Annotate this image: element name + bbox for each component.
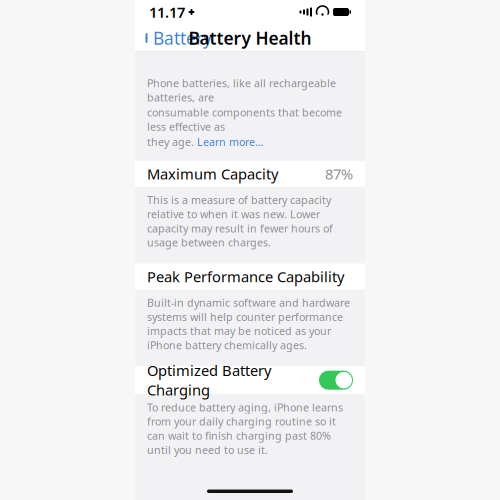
button[interactable]: Peak Performance Capability: [135, 263, 365, 289]
staticText: Phone batteries, like all rechargeable b…: [147, 76, 336, 104]
staticText: 11.17: [149, 2, 185, 22]
staticText: Peak Performance Capability: [147, 267, 344, 286]
staticText: Learn more…: [197, 135, 263, 149]
staticText: Optimized Battery Charging: [147, 361, 271, 400]
staticText: To reduce battery aging, iPhone learns f…: [147, 400, 343, 457]
staticText: 87%: [325, 164, 353, 184]
button[interactable]: Learn more…: [197, 135, 263, 149]
staticText: they age.: [147, 135, 194, 149]
staticText: Battery Health: [188, 26, 311, 49]
staticText: Built-in dynamic software and hardware s…: [147, 295, 350, 352]
staticText: consumable components that become less e…: [147, 105, 342, 134]
staticText: Battery: [153, 26, 212, 49]
button[interactable]: Maximum Capacity: [135, 161, 365, 187]
button[interactable]: Battery: [135, 21, 212, 54]
staticText: Maximum Capacity: [147, 164, 278, 184]
button[interactable]: Optimized Battery Charging: [135, 366, 365, 394]
staticText: This is a measure of battery capacity re…: [147, 193, 333, 249]
